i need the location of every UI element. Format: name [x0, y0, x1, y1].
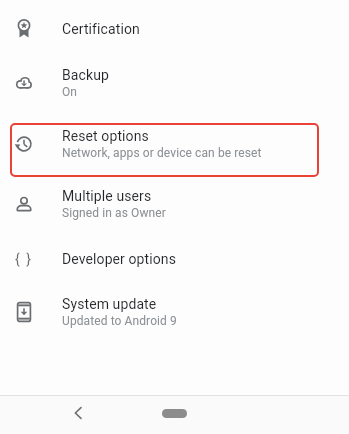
staticText: Reset options: [62, 128, 149, 144]
staticText: Multiple users: [62, 188, 152, 204]
staticText: Certification: [62, 21, 140, 37]
button[interactable]: { }: [0, 234, 349, 283]
staticText: Network, apps or device can be reset: [62, 146, 262, 160]
staticText: On: [62, 85, 78, 99]
button[interactable]: Certification: [0, 5, 349, 53]
staticText: System update: [62, 296, 157, 312]
button[interactable]: [62, 394, 94, 431]
button[interactable]: [162, 409, 187, 418]
staticText: Signed in as Owner: [62, 206, 166, 220]
button[interactable]: Multiple users: [0, 174, 349, 234]
button[interactable]: Reset options: [0, 113, 349, 174]
staticText: Developer options: [62, 251, 177, 267]
button[interactable]: System update: [0, 283, 349, 341]
button[interactable]: Backup: [0, 53, 349, 113]
staticText: { }: [15, 251, 33, 267]
staticText: Backup: [62, 67, 109, 83]
staticText: Updated to Android 9: [62, 314, 177, 328]
